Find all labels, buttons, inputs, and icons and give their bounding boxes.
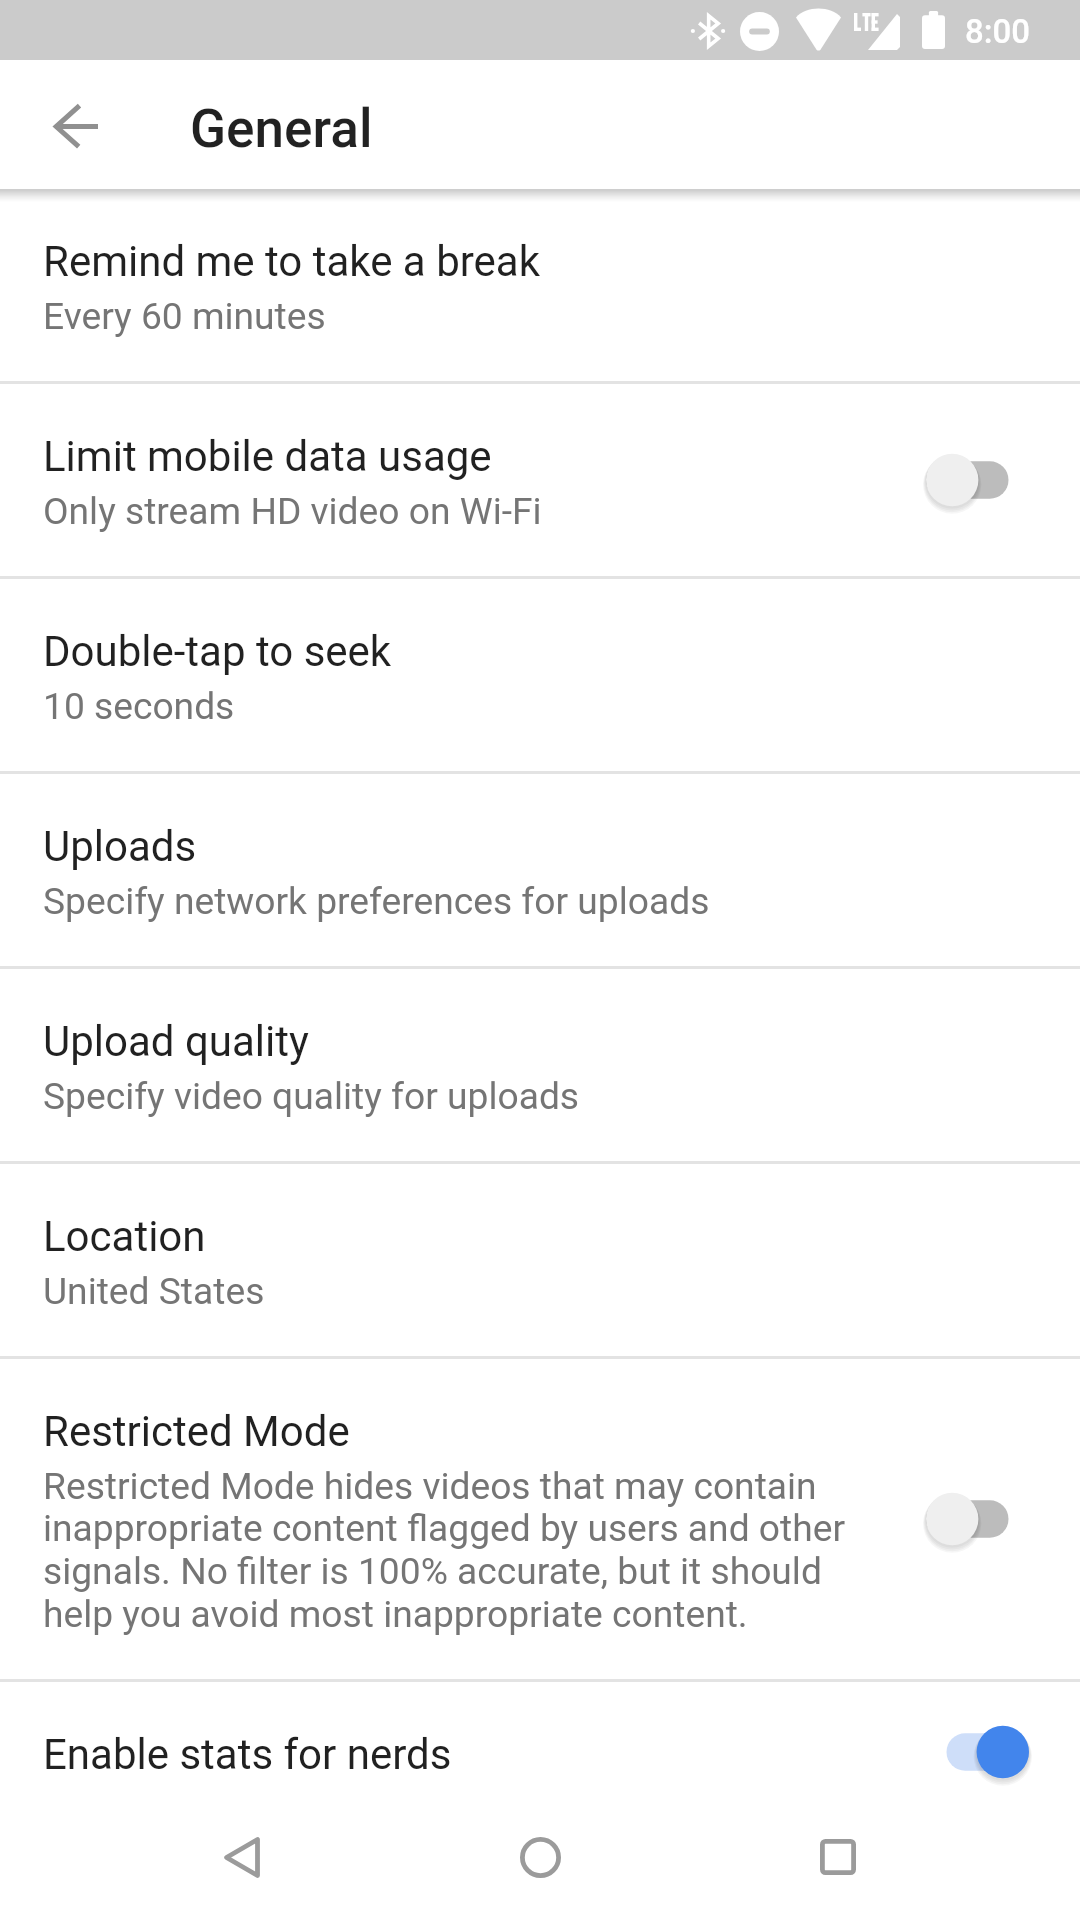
- staticText: 10 seconds: [43, 684, 235, 728]
- staticText: 8:00: [965, 12, 1031, 51]
- staticText: Remind me to take a break: [43, 237, 540, 286]
- button[interactable]: Home: [494, 1811, 586, 1903]
- button[interactable]: Restricted Mode: [0, 1359, 1080, 1679]
- button[interactable]: Double-tap to seek: [0, 579, 1080, 771]
- staticText: Specify network preferences for uploads: [43, 879, 710, 923]
- staticText: Only stream HD video on Wi-Fi: [43, 489, 542, 533]
- button[interactable]: Limit mobile data usage: [926, 432, 1029, 528]
- staticText: Uploads: [43, 822, 197, 871]
- staticText: Limit mobile data usage: [43, 432, 492, 481]
- button[interactable]: Restricted Mode: [926, 1471, 1029, 1567]
- staticText: Enable stats for nerds: [43, 1730, 452, 1779]
- staticText: General: [190, 98, 373, 160]
- button[interactable]: Enable stats for nerds: [926, 1704, 1029, 1800]
- staticText: United States: [43, 1269, 265, 1313]
- staticText: Double-tap to seek: [43, 627, 392, 676]
- staticText: Every 60 minutes: [43, 294, 326, 338]
- button[interactable]: Uploads: [0, 774, 1080, 966]
- button[interactable]: Back: [34, 82, 120, 168]
- button[interactable]: Recent apps: [792, 1811, 884, 1903]
- button[interactable]: Upload quality: [0, 969, 1080, 1161]
- button[interactable]: Limit mobile data usage: [0, 384, 1080, 576]
- staticText: Specify video quality for uploads: [43, 1074, 580, 1118]
- button[interactable]: Back: [196, 1811, 288, 1903]
- staticText: Upload quality: [43, 1017, 309, 1066]
- button[interactable]: Location: [0, 1164, 1080, 1356]
- staticText: Restricted Mode: [43, 1407, 350, 1456]
- button[interactable]: Enable stats for nerds: [0, 1682, 1080, 1822]
- button[interactable]: Remind me to take a break: [0, 189, 1080, 381]
- staticText: Restricted Mode hides videos that may co…: [43, 1464, 890, 1636]
- staticText: Location: [43, 1212, 206, 1261]
